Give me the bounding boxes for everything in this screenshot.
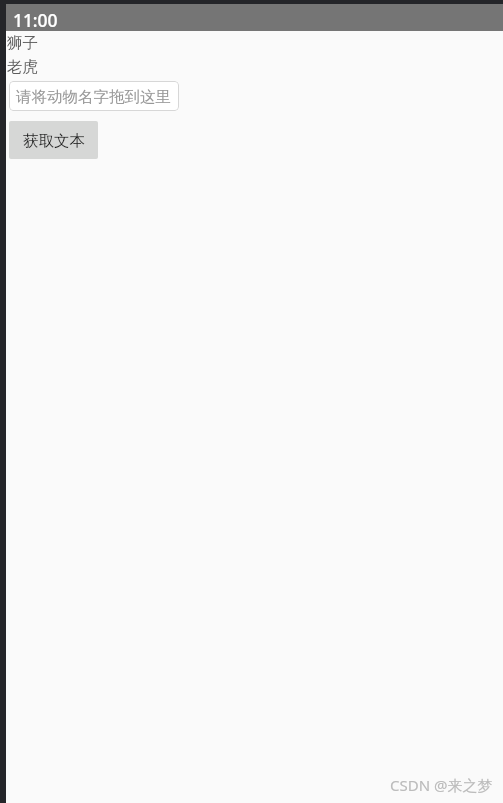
button[interactable]: 狮子 (7, 33, 38, 53)
button[interactable]: 请将动物名字拖到这里 (9, 81, 179, 111)
staticText: 请将动物名字拖到这里 (16, 87, 171, 107)
staticText: 11:00 (13, 8, 58, 32)
button[interactable]: 老虎 (7, 57, 38, 77)
staticText: 获取文本 (23, 131, 85, 151)
button[interactable]: 获取文本 (9, 121, 98, 159)
staticText: CSDN @来之梦 (390, 775, 493, 795)
